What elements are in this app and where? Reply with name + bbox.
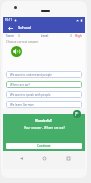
button[interactable]: Home: [38, 152, 50, 164]
staticText: Choose correct answer: [6, 40, 39, 44]
button[interactable]: Back: [15, 152, 27, 164]
staticText: Your answer - Where are we?: [24, 126, 65, 130]
button[interactable]: We learn German: [6, 101, 82, 108]
staticText: Wonderful!: [35, 119, 53, 123]
button[interactable]: Play audio: [11, 46, 22, 57]
staticText: We want to understand people: [10, 73, 52, 77]
staticText: 3: [18, 34, 20, 38]
staticText: We learn German: [10, 103, 34, 107]
staticText: High: [75, 34, 82, 38]
button[interactable]: We want to understand people: [6, 71, 82, 78]
staticText: Where are we?: [10, 83, 30, 87]
staticText: Score: [6, 34, 14, 38]
staticText: 10:11: [5, 18, 13, 22]
staticText: Level: [41, 34, 49, 38]
button[interactable]: Back: [6, 24, 14, 32]
staticText: 3: [70, 34, 72, 38]
button[interactable]: We want to speak with people: [6, 91, 82, 98]
staticText: We want to speak with people: [10, 93, 51, 97]
button[interactable]: Recent apps: [62, 152, 74, 164]
staticText: School: [18, 25, 32, 31]
button[interactable]: Where are we?: [6, 81, 82, 88]
staticText: Continue: [37, 144, 51, 148]
button[interactable]: Continue: [6, 143, 82, 149]
button[interactable]: Report problem: [73, 110, 81, 118]
